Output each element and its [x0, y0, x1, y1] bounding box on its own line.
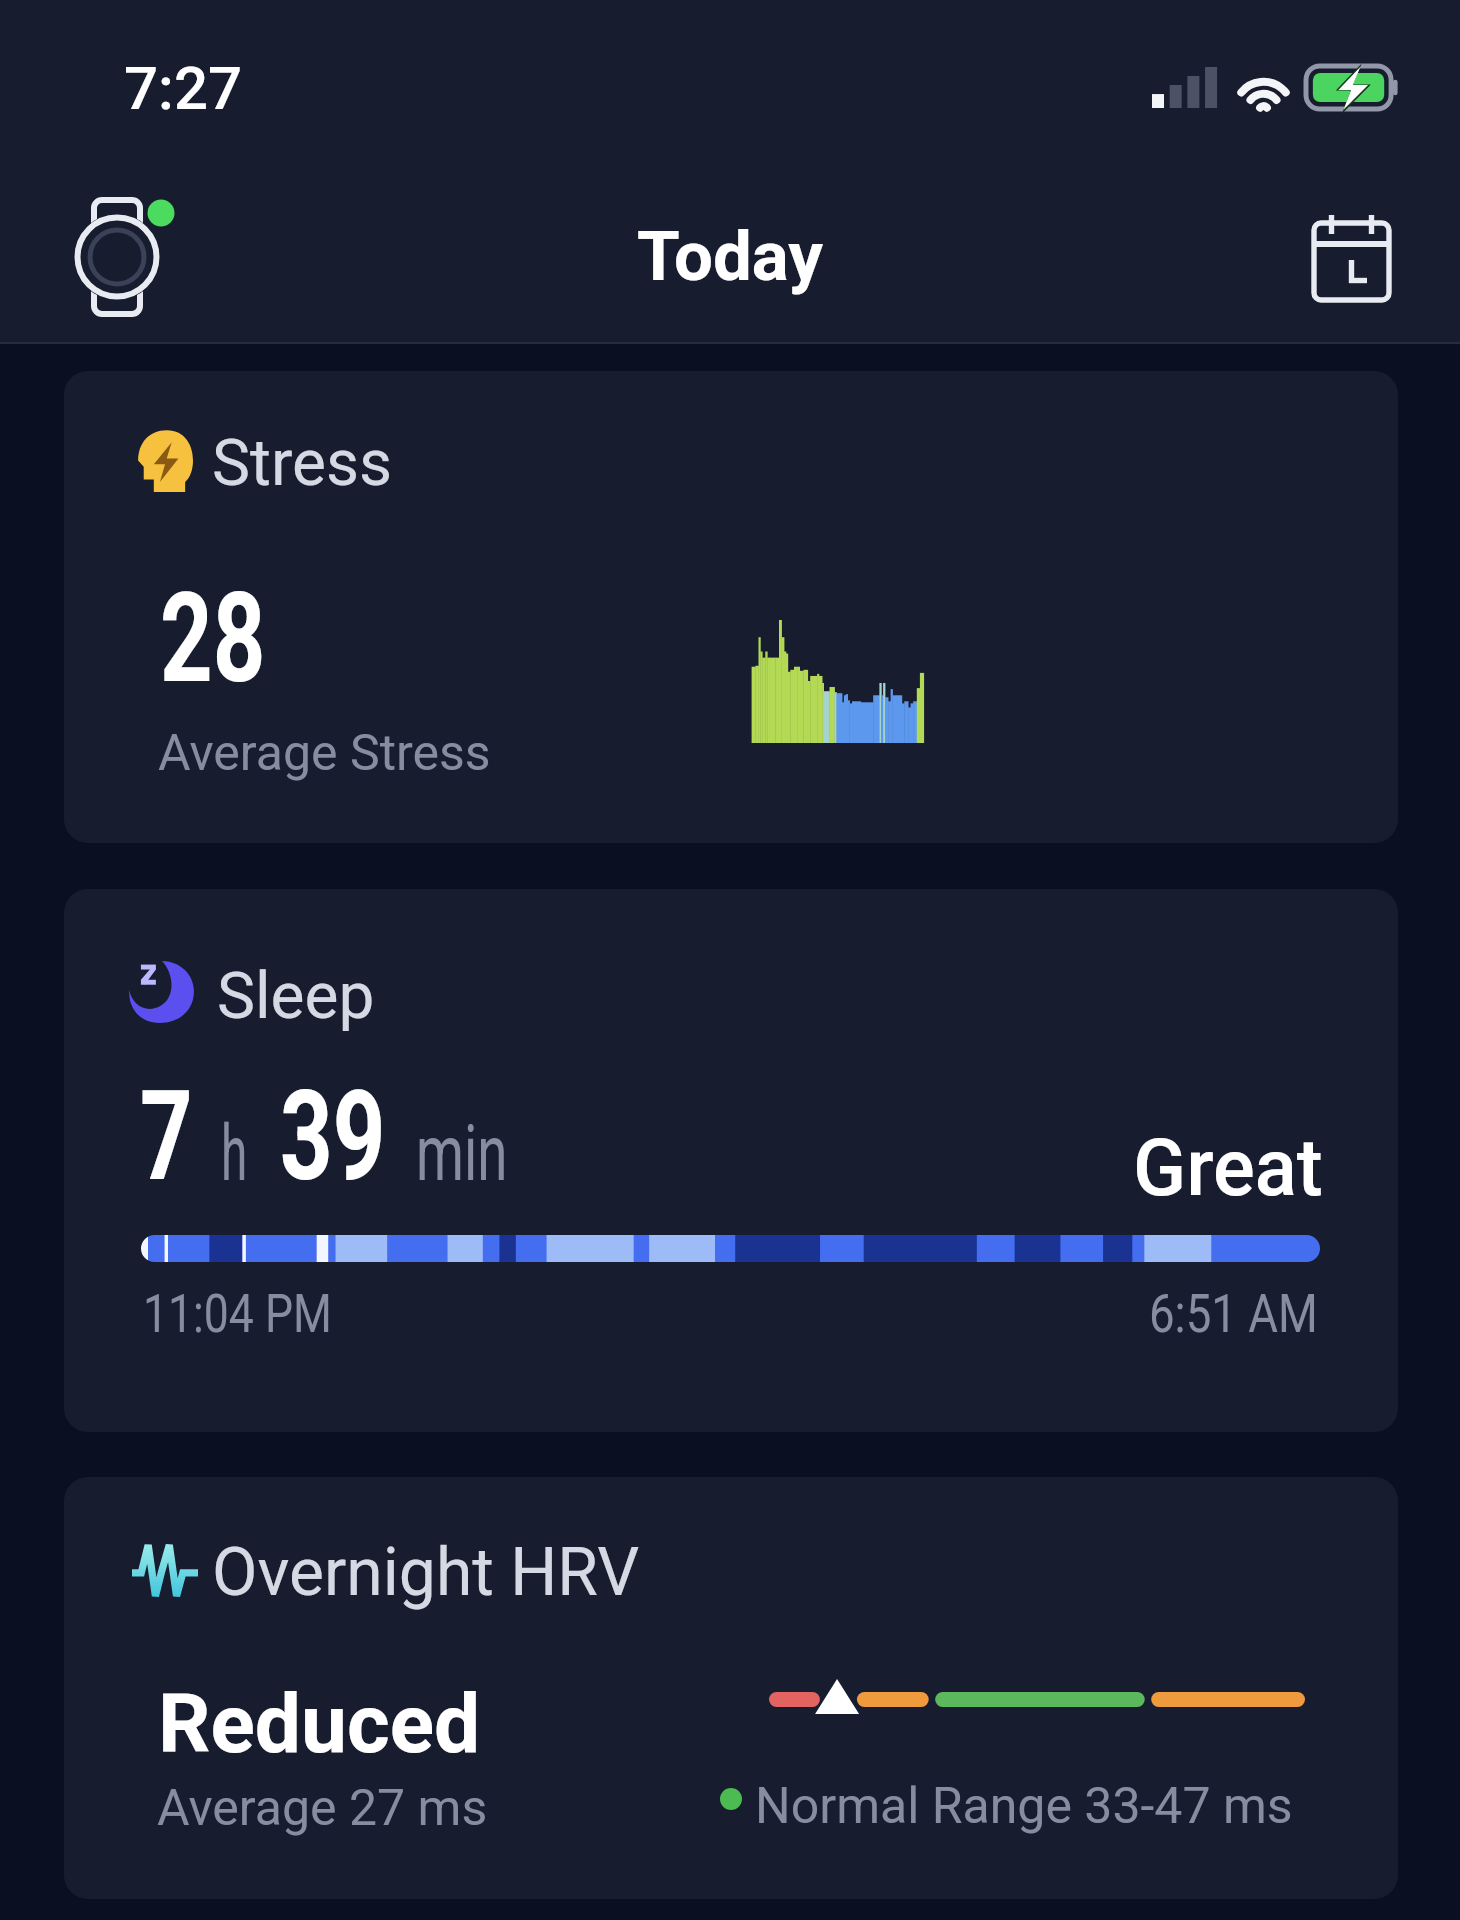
- staticText: Normal Range 33-47 ms: [755, 1777, 1293, 1836]
- staticText: 7: [140, 1064, 193, 1209]
- staticText: 6:51 AM: [1149, 1283, 1318, 1345]
- staticText: Sleep: [217, 959, 375, 1034]
- staticText: Overnight HRV: [212, 1534, 640, 1611]
- staticText: Reduced: [158, 1676, 481, 1772]
- staticText: h: [221, 1109, 248, 1199]
- staticText: 7:27: [124, 53, 243, 123]
- staticText: Great: [1133, 1121, 1323, 1215]
- staticText: 28: [160, 566, 266, 711]
- staticText: 11:04 PM: [143, 1283, 332, 1345]
- staticText: 39: [280, 1064, 386, 1209]
- button[interactable]: Stress: [64, 371, 1398, 843]
- button[interactable]: Calendar: [1300, 205, 1404, 311]
- staticText: min: [416, 1109, 508, 1199]
- button[interactable]: Paired watch: [67, 191, 183, 323]
- staticText: Average Stress: [158, 724, 491, 783]
- button[interactable]: Sleep: [64, 889, 1398, 1432]
- staticText: Stress: [212, 426, 393, 501]
- button[interactable]: Overnight HRV: [64, 1477, 1398, 1899]
- staticText: Average 27 ms: [157, 1779, 488, 1838]
- staticText: Today: [637, 216, 823, 297]
